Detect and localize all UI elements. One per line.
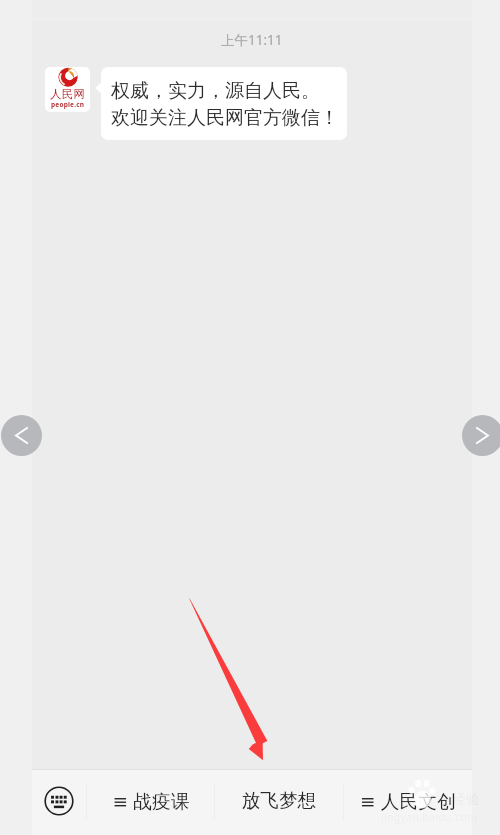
staticText: 放飞梦想 [241, 789, 317, 812]
staticText: people.cn [51, 100, 85, 109]
staticText: jingyan.baidu.com [381, 810, 478, 824]
staticText: 人民网 [50, 87, 86, 101]
button[interactable]: ≡ 人民文创 [343, 770, 473, 835]
button[interactable]: 放飞梦想 [214, 770, 343, 835]
staticText: 上午11:11 [221, 31, 283, 49]
button[interactable]: ≡ 战疫课 [86, 770, 215, 835]
staticText: ≡ 战疫课 [112, 788, 190, 813]
staticText: 经验 [452, 791, 480, 809]
button[interactable]: Keyboard [32, 770, 86, 835]
staticText: ≡ 人民文创 [360, 788, 456, 813]
button[interactable]: 权威，实力，源自人民。 欢迎关注人民网官方微信！ [101, 67, 347, 140]
button[interactable]: 人民网 avatar [45, 67, 90, 112]
button[interactable]: Next [462, 415, 500, 456]
staticText: 权威，实力，源自人民。 欢迎关注人民网官方微信！ [111, 79, 339, 130]
button[interactable]: Previous [1, 415, 42, 456]
